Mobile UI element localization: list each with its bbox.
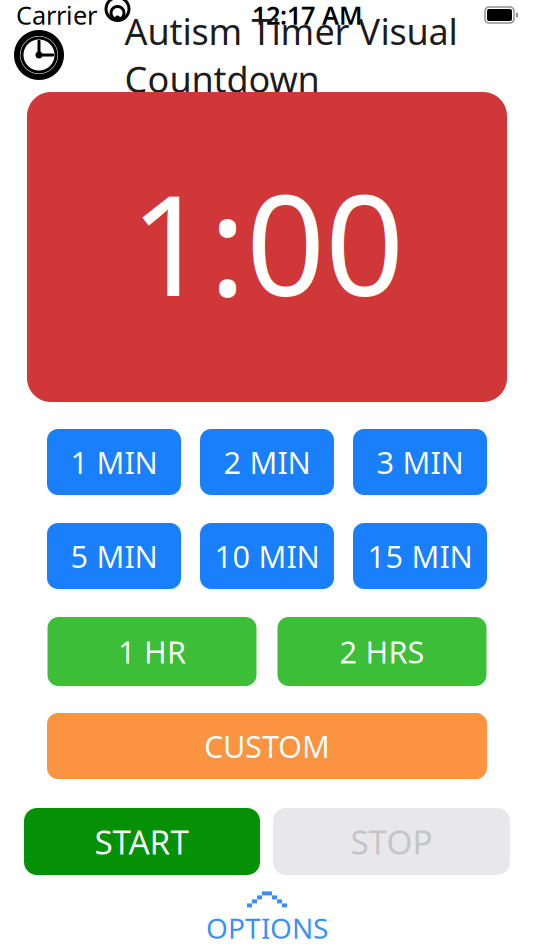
staticText: 2 HRS [339,631,424,672]
button[interactable]: 2 MIN [200,429,334,495]
button[interactable]: START [24,808,260,875]
button[interactable]: OPTIONS [172,893,362,945]
button[interactable]: 2 HRS [277,617,486,686]
staticText: Carrier [16,0,97,32]
staticText: 12:17 AM [252,0,363,32]
staticText: 10 MIN [214,536,319,576]
staticText: 5 MIN [70,536,157,576]
staticText: 1 HR [118,631,186,672]
staticText: START [94,819,189,864]
button[interactable]: 15 MIN [353,523,487,589]
button[interactable]: 1 HR [47,617,256,686]
button[interactable]: STOP [273,808,510,875]
button[interactable]: 10 MIN [200,523,334,589]
staticText: OPTIONS [206,909,328,947]
staticText: STOP [350,819,432,864]
staticText: 1:00 [130,150,404,334]
button[interactable]: 5 MIN [47,523,181,589]
staticText: 2 MIN [223,442,310,482]
staticText: 15 MIN [367,536,472,576]
staticText: 3 MIN [376,442,463,482]
staticText: 1 MIN [70,442,157,482]
staticText: Autism Timer Visual Countdown [124,7,457,103]
button[interactable]: 3 MIN [353,429,487,495]
button[interactable]: Settings [12,31,66,79]
button[interactable]: 1 MIN [47,429,181,495]
button[interactable]: CUSTOM [47,713,487,779]
staticText: CUSTOM [204,726,330,766]
